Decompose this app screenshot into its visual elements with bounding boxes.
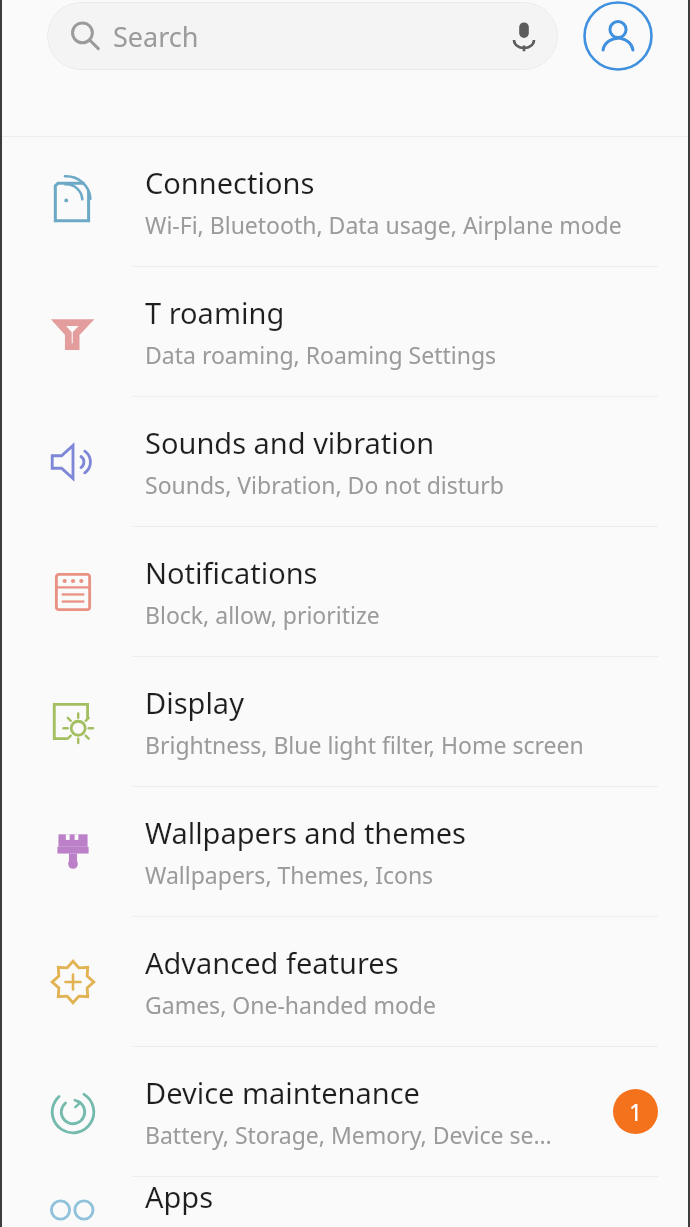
staticText: Wi-Fi, Bluetooth, Data usage, Airplane m… xyxy=(145,209,622,240)
button[interactable]: Device maintenance xyxy=(0,1047,690,1176)
button[interactable]: Wallpapers and themes xyxy=(0,787,690,916)
staticText: Sounds, Vibration, Do not disturb xyxy=(145,469,504,500)
button[interactable]: Apps xyxy=(0,1177,690,1227)
staticText: Block, allow, prioritize xyxy=(145,599,380,630)
staticText: Wallpapers, Themes, Icons xyxy=(145,859,434,890)
staticText: Search xyxy=(113,18,199,55)
staticText: Games, One-handed mode xyxy=(145,989,436,1020)
button[interactable]: Display xyxy=(0,657,690,786)
button[interactable]: T roaming xyxy=(0,267,690,396)
button[interactable]: Sounds and vibration xyxy=(0,397,690,526)
button[interactable]: Connections xyxy=(0,137,690,266)
button[interactable]: Account xyxy=(582,0,654,72)
button[interactable]: Search xyxy=(47,2,558,70)
staticText: Battery, Storage, Memory, Device se… xyxy=(145,1119,552,1150)
staticText: 1 xyxy=(629,1096,643,1127)
staticText: Notifications xyxy=(145,553,318,592)
staticText: Brightness, Blue light filter, Home scre… xyxy=(145,729,584,760)
staticText: Advanced features xyxy=(145,943,399,982)
staticText: Apps xyxy=(145,1177,214,1216)
staticText: Device maintenance xyxy=(145,1073,420,1112)
button[interactable]: Voice search xyxy=(504,16,544,56)
staticText: T roaming xyxy=(145,293,285,332)
staticText: Data roaming, Roaming Settings xyxy=(145,339,497,370)
staticText: Connections xyxy=(145,163,315,202)
button[interactable]: Advanced features xyxy=(0,917,690,1046)
button[interactable]: Notifications xyxy=(0,527,690,656)
staticText: Sounds and vibration xyxy=(145,423,435,462)
staticText: Wallpapers and themes xyxy=(145,813,467,852)
staticText: Display xyxy=(145,683,244,722)
